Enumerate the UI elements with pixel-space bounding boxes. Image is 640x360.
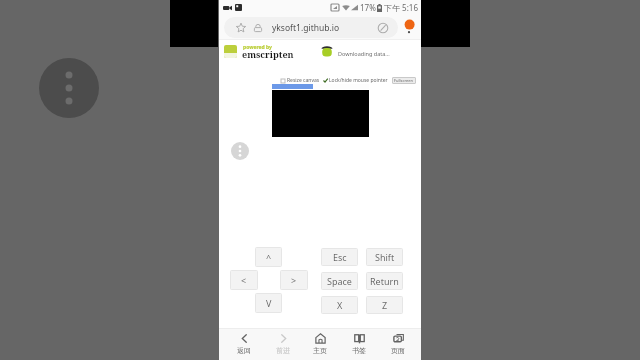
- button[interactable]: Esc: [321, 248, 358, 266]
- staticText: Esc: [333, 251, 347, 263]
- button[interactable]: ^: [255, 247, 282, 267]
- staticText: ^: [266, 251, 272, 263]
- button[interactable]: <: [230, 270, 258, 290]
- staticText: V: [266, 297, 272, 309]
- staticText: Fullscreen: [394, 78, 414, 83]
- staticText: yksoft1.github.io: [272, 22, 340, 34]
- button[interactable]: V: [255, 293, 282, 313]
- button[interactable]: Shift: [366, 248, 403, 266]
- staticText: 前进: [276, 346, 290, 355]
- button[interactable]: Z: [366, 296, 403, 314]
- staticText: Z: [382, 299, 388, 311]
- button[interactable]: X: [321, 296, 358, 314]
- staticText: Return: [370, 275, 399, 287]
- staticText: Resize canvas: [287, 77, 320, 84]
- staticText: >: [291, 274, 297, 286]
- button[interactable]: Fullscreen: [392, 77, 416, 84]
- staticText: 书签: [352, 346, 366, 355]
- button[interactable]: 主页: [303, 329, 337, 358]
- button[interactable]: 前进: [266, 329, 300, 358]
- button[interactable]: More options: [400, 17, 418, 38]
- staticText: 17%: [360, 2, 376, 13]
- button[interactable]: Return: [366, 272, 403, 290]
- button[interactable]: 页面: [381, 329, 415, 358]
- staticText: Downloading data...: [338, 50, 390, 57]
- staticText: Lock/hide mouse pointer: [329, 77, 388, 84]
- staticText: powered by: [243, 44, 272, 51]
- button[interactable]: Page menu: [231, 142, 249, 160]
- button[interactable]: yksoft1.github.io: [224, 17, 398, 38]
- button[interactable]: 返回: [227, 329, 261, 358]
- staticText: X: [337, 299, 343, 311]
- staticText: emscripten: [242, 48, 294, 60]
- staticText: 返回: [237, 346, 251, 355]
- button[interactable]: Space: [321, 272, 358, 290]
- staticText: 下午 5:16: [384, 2, 418, 13]
- staticText: Space: [327, 275, 352, 287]
- button[interactable]: Resize canvas: [281, 77, 320, 84]
- staticText: <: [241, 274, 247, 286]
- button[interactable]: More options: [39, 58, 99, 118]
- button[interactable]: Lock/hide mouse pointer: [323, 77, 388, 84]
- staticText: 主页: [313, 346, 327, 355]
- staticText: Shift: [375, 251, 395, 263]
- button[interactable]: 书签: [342, 329, 376, 358]
- button[interactable]: >: [280, 270, 308, 290]
- staticText: 页面: [391, 346, 405, 355]
